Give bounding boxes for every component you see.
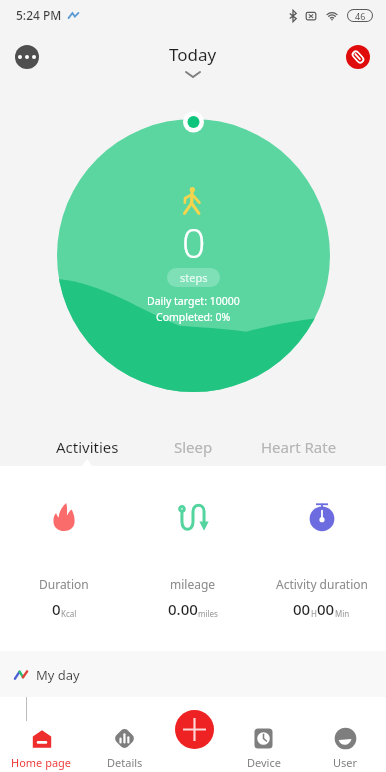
staticText: Min <box>335 608 350 619</box>
button[interactable]: Home page <box>0 697 83 772</box>
button[interactable]: Details <box>83 697 166 772</box>
staticText: Heart Rate <box>261 437 337 457</box>
button[interactable]: Heart Rate <box>246 424 352 470</box>
staticText: 0.00 <box>168 599 198 619</box>
staticText: Home page <box>11 755 72 770</box>
button[interactable]: Activity duration <box>257 466 386 651</box>
staticText: 5:24 PM <box>16 7 62 23</box>
staticText: Completed: 0% <box>156 310 231 324</box>
staticText: My day <box>36 666 80 684</box>
button[interactable]: My day <box>0 658 386 691</box>
staticText: H <box>311 608 317 619</box>
staticText: Activity duration <box>276 576 368 592</box>
staticText: Today <box>169 43 217 66</box>
button[interactable]: mileage <box>128 466 257 651</box>
button[interactable]: More options <box>15 45 39 69</box>
staticText: 46 <box>355 10 366 21</box>
staticText: Device <box>247 755 281 770</box>
staticText: Sleep <box>174 437 213 457</box>
staticText: steps <box>180 270 208 285</box>
staticText: 0 <box>182 214 206 270</box>
button[interactable]: Device <box>222 697 305 772</box>
staticText: 00 <box>317 599 335 619</box>
staticText: 0 <box>52 599 61 619</box>
staticText: mileage <box>170 576 216 592</box>
button[interactable]: User <box>305 697 386 772</box>
button[interactable]: Duration <box>0 466 128 651</box>
staticText: Daily target: 10000 <box>147 294 240 308</box>
button[interactable]: Add <box>175 710 214 749</box>
button[interactable]: Activities <box>34 424 140 470</box>
staticText: User <box>333 755 358 770</box>
staticText: 00 <box>293 599 311 619</box>
button[interactable]: Sleep <box>140 424 246 470</box>
staticText: Activities <box>56 437 119 457</box>
staticText: Kcal <box>61 608 77 619</box>
staticText: Details <box>107 755 143 770</box>
button[interactable]: Attach <box>346 45 370 69</box>
staticText: Duration <box>39 576 89 592</box>
staticText: miles <box>198 608 218 619</box>
button[interactable]: Today <box>0 30 386 78</box>
